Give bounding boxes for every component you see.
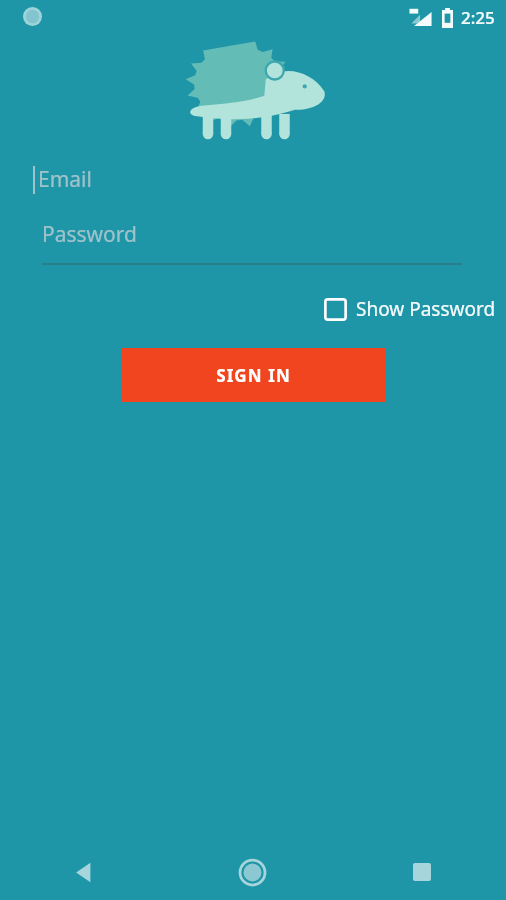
staticText: SIGN IN <box>216 364 291 387</box>
staticText: Email <box>38 165 92 194</box>
button[interactable]: Recent apps <box>337 844 506 900</box>
button[interactable]: Email <box>0 145 506 213</box>
button[interactable]: Back <box>0 844 168 900</box>
button[interactable]: Show Password <box>320 291 500 327</box>
staticText: Show Password <box>356 296 496 322</box>
staticText: Password <box>42 220 137 249</box>
button[interactable]: Home <box>168 844 337 900</box>
button[interactable]: Password <box>0 213 506 265</box>
staticText: 2:25 <box>461 6 495 29</box>
button[interactable]: SIGN IN <box>122 348 385 402</box>
